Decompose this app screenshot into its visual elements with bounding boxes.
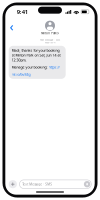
staticText: Today 09:41: [44, 41, 55, 44]
staticText: Manage your booking:: [11, 65, 48, 69]
button[interactable]: Add attachment: [9, 180, 17, 188]
staticText: Text Message · SMS: [40, 38, 60, 41]
staticText: Milton Park: [41, 31, 56, 35]
staticText: Madi, thanks for your booking at Milton …: [11, 48, 60, 62]
staticText: ml.io/bv84g: [11, 72, 30, 77]
staticText: Text Message · SMS: [22, 182, 52, 186]
button[interactable]: Text Message · SMS: [19, 180, 91, 188]
staticText: 9:41: [17, 8, 28, 16]
staticText: https://: [48, 65, 59, 69]
button[interactable]: Back: [5, 21, 16, 35]
